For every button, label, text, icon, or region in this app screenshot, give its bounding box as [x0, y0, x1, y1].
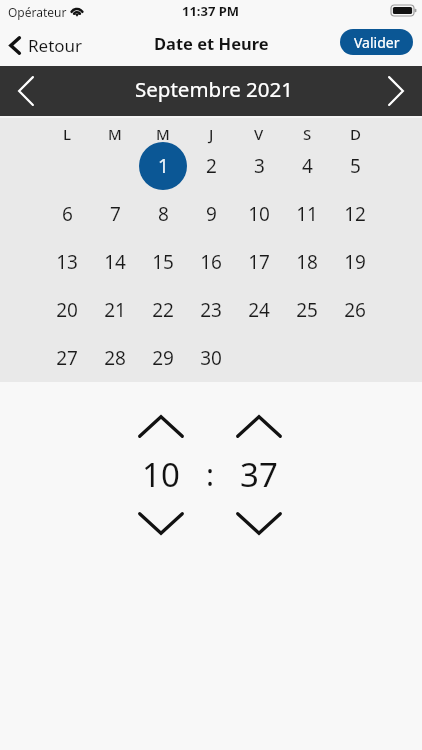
button[interactable]: 2 [187, 142, 235, 190]
staticText: Retour [28, 34, 83, 57]
staticText: 1 [158, 153, 169, 179]
staticText: 26 [344, 297, 366, 323]
staticText: 21 [104, 297, 126, 323]
staticText: Septembre 2021 [135, 75, 294, 103]
staticText: 9 [206, 201, 217, 227]
staticText: 10 [142, 452, 180, 488]
staticText: 25 [296, 297, 318, 323]
staticText: J [209, 124, 214, 144]
button[interactable]: 4 [283, 142, 331, 190]
button[interactable]: 16 [187, 238, 235, 286]
button[interactable]: 17 [235, 238, 283, 286]
button[interactable]: 24 [235, 286, 283, 334]
button[interactable]: 9 [187, 190, 235, 238]
staticText: 20 [56, 297, 78, 323]
staticText: M [108, 124, 122, 144]
button[interactable]: 1 [139, 142, 187, 190]
staticText: Opérateur [8, 4, 67, 20]
button[interactable]: Retour [5, 31, 87, 60]
staticText: 11:37 PM [182, 2, 240, 20]
button[interactable]: Diminuer les minutes [229, 507, 289, 539]
button[interactable]: Mois suivant [370, 66, 422, 116]
staticText: M [156, 124, 170, 144]
staticText: 23 [200, 297, 222, 323]
button[interactable]: 19 [331, 238, 379, 286]
button[interactable]: Mois précédent [0, 66, 52, 116]
staticText: Date et Heure [154, 32, 269, 54]
staticText: 10 [248, 201, 270, 227]
staticText: 2 [206, 153, 217, 179]
button[interactable]: 28 [91, 334, 139, 382]
button[interactable]: 8 [139, 190, 187, 238]
button[interactable]: 29 [139, 334, 187, 382]
button[interactable]: 6 [43, 190, 91, 238]
button[interactable]: Augmenter les minutes [229, 410, 289, 442]
staticText: 3 [254, 153, 265, 179]
button[interactable]: Augmenter les heures [131, 410, 191, 442]
staticText: 14 [104, 249, 126, 275]
staticText: V [254, 124, 264, 144]
staticText: : [203, 454, 217, 495]
button[interactable]: 5 [331, 142, 379, 190]
button[interactable]: 7 [91, 190, 139, 238]
staticText: 30 [200, 345, 222, 371]
staticText: 28 [104, 345, 126, 371]
button[interactable]: 11 [283, 190, 331, 238]
staticText: 13 [56, 249, 78, 275]
staticText: 8 [158, 201, 169, 227]
staticText: 24 [248, 297, 270, 323]
button[interactable]: 13 [43, 238, 91, 286]
button[interactable]: 12 [331, 190, 379, 238]
button[interactable]: 15 [139, 238, 187, 286]
staticText: 37 [240, 452, 278, 488]
staticText: 29 [152, 345, 174, 371]
button[interactable]: 25 [283, 286, 331, 334]
button[interactable]: 27 [43, 334, 91, 382]
staticText: 18 [296, 249, 318, 275]
button[interactable]: Valider [340, 29, 413, 55]
button[interactable]: Diminuer les heures [131, 507, 191, 539]
staticText: 22 [152, 297, 174, 323]
button[interactable]: 22 [139, 286, 187, 334]
staticText: 19 [344, 249, 366, 275]
staticText: 7 [110, 201, 121, 227]
staticText: 16 [200, 249, 222, 275]
button[interactable]: 10 [235, 190, 283, 238]
staticText: S [303, 124, 312, 144]
button[interactable]: 20 [43, 286, 91, 334]
button[interactable]: 26 [331, 286, 379, 334]
staticText: 11 [296, 201, 318, 227]
staticText: Valider [354, 33, 400, 52]
staticText: 27 [56, 345, 78, 371]
staticText: 17 [248, 249, 270, 275]
button[interactable]: 14 [91, 238, 139, 286]
button[interactable]: 18 [283, 238, 331, 286]
staticText: 4 [302, 153, 313, 179]
staticText: L [63, 124, 72, 144]
staticText: 12 [344, 201, 366, 227]
button[interactable]: 23 [187, 286, 235, 334]
staticText: D [350, 124, 361, 144]
button[interactable]: 3 [235, 142, 283, 190]
staticText: 6 [62, 201, 73, 227]
staticText: 5 [350, 153, 361, 179]
button[interactable]: 21 [91, 286, 139, 334]
button[interactable]: 30 [187, 334, 235, 382]
staticText: 15 [152, 249, 174, 275]
